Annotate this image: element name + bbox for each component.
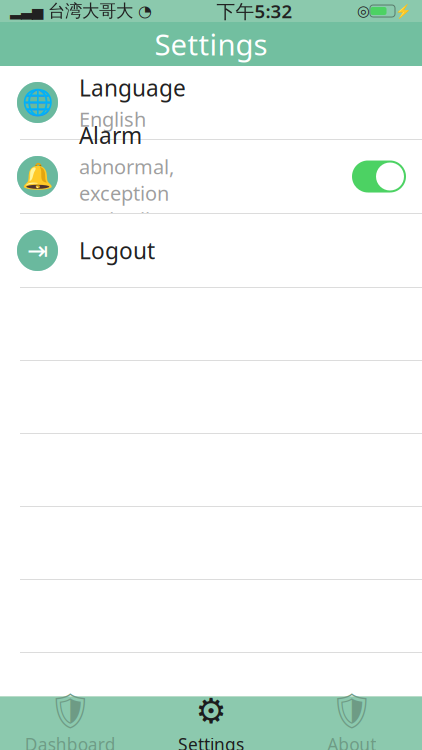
staticText: 🛡 bbox=[48, 691, 92, 731]
staticText: Dashboard bbox=[25, 733, 116, 750]
staticText: ⇥ bbox=[27, 236, 48, 265]
staticText: ▂▃▅ bbox=[10, 3, 43, 19]
staticText: Alarm bbox=[79, 120, 142, 150]
staticText: 台湾大哥大 bbox=[43, 0, 138, 22]
staticText: Settings bbox=[154, 24, 267, 63]
staticText: 🛡 bbox=[330, 691, 374, 731]
staticText: Language bbox=[79, 73, 186, 103]
staticText: About bbox=[327, 733, 376, 750]
staticText: ⚡ bbox=[395, 3, 412, 19]
staticText: ⚙ bbox=[195, 691, 226, 731]
staticText: 下午5:32 bbox=[216, 0, 292, 23]
button[interactable]: 🔔 bbox=[0, 140, 422, 213]
staticText: Logout bbox=[79, 235, 155, 265]
button[interactable]: ⇥ bbox=[0, 214, 422, 287]
button[interactable]: 🌐 bbox=[0, 66, 422, 139]
button[interactable]: ⚙ bbox=[141, 697, 281, 750]
staticText: abnormal, exception and call bbox=[79, 153, 174, 233]
button[interactable]: 🛡 bbox=[0, 697, 141, 750]
staticText: ◔ bbox=[138, 2, 152, 20]
staticText: English bbox=[79, 106, 146, 132]
staticText: 🔔 bbox=[21, 162, 53, 191]
staticText: ◎ bbox=[357, 3, 370, 19]
button[interactable]: 🛡 bbox=[281, 697, 422, 750]
staticText: 🌐 bbox=[21, 88, 53, 117]
staticText: Settings bbox=[178, 733, 244, 750]
